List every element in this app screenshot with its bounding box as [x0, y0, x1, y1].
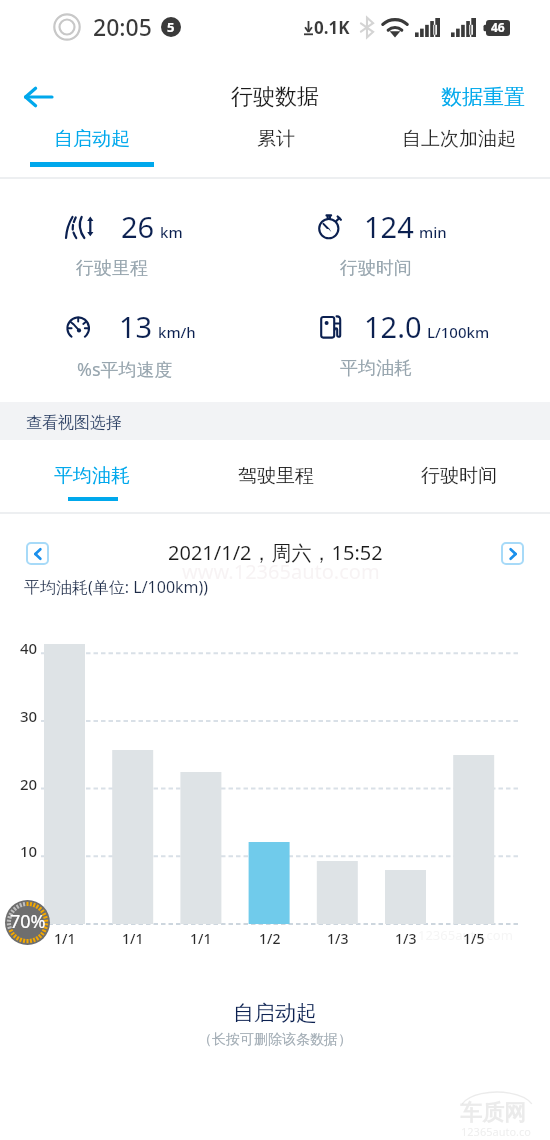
staticText: 46	[491, 19, 505, 35]
staticText: min	[419, 222, 447, 242]
staticText: 行驶数据	[231, 83, 319, 111]
staticText: 1/1	[122, 929, 144, 948]
staticText: 1/1	[190, 929, 212, 948]
staticText: 查看视图选择	[26, 413, 122, 433]
staticText: 124	[364, 207, 414, 246]
button[interactable]: Previous day	[26, 542, 49, 565]
staticText: 12.0	[364, 307, 422, 346]
button[interactable]: 1/5	[453, 656, 494, 950]
staticText: www.12365auto.com	[182, 558, 380, 585]
staticText: 40	[20, 638, 38, 658]
staticText: 70%	[10, 909, 46, 934]
staticText: 2021/1/2，周六，15:52	[168, 539, 383, 566]
staticText: 13	[119, 307, 153, 346]
button[interactable]: 1/1	[180, 656, 221, 950]
button[interactable]: 1/1	[44, 656, 85, 950]
staticText: 20:05	[93, 11, 152, 42]
staticText: 行驶时间	[340, 257, 412, 280]
staticText: （长按可删除该条数据）	[198, 1031, 352, 1049]
staticText: km/h	[158, 322, 196, 342]
button[interactable]: 自上次加油起	[367, 126, 550, 178]
staticText: 驾驶里程	[238, 464, 314, 488]
staticText: 20	[20, 774, 38, 794]
staticText: 累计	[257, 127, 295, 151]
staticText: 5	[167, 18, 175, 36]
staticText: 0.1K	[314, 16, 350, 39]
staticText: 1/1	[54, 929, 76, 948]
staticText: 1/2	[259, 929, 281, 948]
button[interactable]: Back	[15, 75, 62, 119]
button[interactable]: 行驶时间	[367, 440, 550, 512]
staticText: 12365auto.com	[418, 926, 513, 944]
button[interactable]: 数据重置	[433, 76, 533, 118]
staticText: 行驶里程	[76, 257, 148, 280]
button[interactable]: 1/1	[112, 656, 153, 950]
button[interactable]: 1/2	[249, 656, 290, 950]
staticText: 车质网	[460, 1099, 526, 1127]
staticText: 12365auto.com	[461, 1124, 541, 1140]
staticText: 平均油耗	[340, 357, 412, 380]
staticText: 平均油耗(单位: L/100km))	[24, 576, 209, 598]
staticText: L/100km	[427, 322, 490, 342]
staticText: 1/3	[395, 929, 417, 948]
button[interactable]: 1/3	[317, 656, 358, 950]
staticText: 自启动起	[233, 1000, 317, 1026]
button[interactable]: Next day	[501, 542, 524, 565]
staticText: 30	[20, 706, 38, 726]
staticText: 1/3	[327, 929, 349, 948]
staticText: 行驶时间	[421, 464, 497, 488]
button[interactable]: 驾驶里程	[184, 440, 367, 512]
staticText: 自上次加油起	[402, 127, 516, 151]
button[interactable]: 平均油耗	[0, 440, 184, 512]
staticText: 自启动起	[54, 127, 130, 151]
staticText: 数据重置	[441, 84, 525, 110]
button[interactable]: 累计	[184, 126, 367, 178]
staticText: %s平均速度	[77, 357, 173, 382]
staticText: 26	[121, 207, 155, 246]
staticText: 1/5	[463, 929, 485, 948]
staticText: 平均油耗	[54, 464, 130, 488]
button[interactable]: 自启动起	[0, 126, 184, 178]
staticText: 10	[20, 841, 38, 861]
button[interactable]: 1/3	[385, 656, 426, 950]
staticText: km	[160, 222, 183, 242]
